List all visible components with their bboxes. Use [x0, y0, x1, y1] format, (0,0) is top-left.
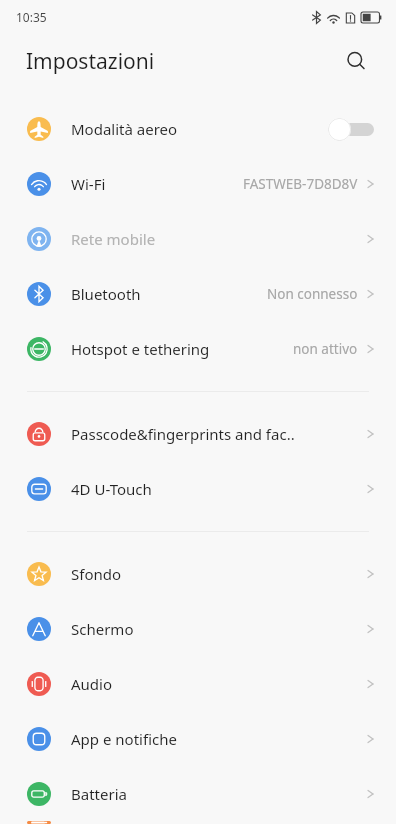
staticText: Batteria — [71, 784, 127, 804]
button[interactable]: Modalità aereo — [0, 101, 396, 156]
button[interactable]: 4D U-Touch — [0, 461, 396, 516]
button[interactable]: Sfondo — [0, 546, 396, 601]
staticText: Non connesso — [267, 285, 358, 303]
staticText: Sfondo — [71, 564, 122, 584]
button[interactable]: Wi-Fi — [0, 156, 396, 211]
staticText: App e notifiche — [71, 729, 177, 749]
button[interactable]: Rete mobile — [0, 211, 396, 266]
button[interactable]: Cerca — [338, 43, 374, 79]
staticText: non attivo — [293, 340, 358, 358]
staticText: 4D U-Touch — [71, 479, 152, 499]
staticText: FASTWEB-7D8D8V — [243, 175, 358, 193]
staticText: Hotspot e tethering — [71, 339, 210, 359]
button[interactable]: Modalità aereo — [328, 117, 374, 141]
button[interactable]: Batteria — [0, 766, 396, 821]
staticText: Audio — [71, 674, 113, 694]
button[interactable]: Hotspot e tethering — [0, 321, 396, 376]
staticText: 10:35 — [16, 9, 47, 25]
staticText: Impostazioni — [26, 47, 155, 76]
button[interactable]: Passcode&fingerprints and fac.. — [0, 406, 396, 461]
staticText: Bluetooth — [71, 284, 141, 304]
staticText: Passcode&fingerprints and fac.. — [71, 424, 295, 444]
staticText: Schermo — [71, 619, 134, 639]
button[interactable] — [0, 821, 396, 824]
staticText: Wi-Fi — [71, 174, 106, 194]
button[interactable]: Audio — [0, 656, 396, 711]
button[interactable]: Schermo — [0, 601, 396, 656]
staticText: Rete mobile — [71, 229, 156, 249]
button[interactable]: Bluetooth — [0, 266, 396, 321]
staticText: Modalità aereo — [71, 119, 178, 139]
button[interactable]: App e notifiche — [0, 711, 396, 766]
